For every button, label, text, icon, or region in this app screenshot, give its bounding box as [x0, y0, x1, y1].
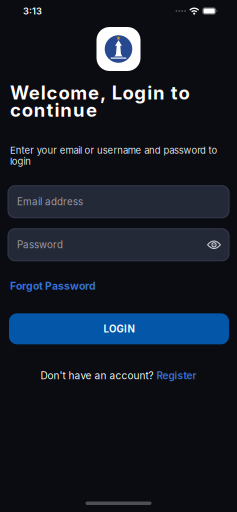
staticText: Welcome, Login to continue — [10, 84, 190, 119]
staticText: Forgot Password — [10, 280, 96, 292]
staticText: Register — [156, 369, 196, 381]
staticText: 3:13 — [23, 5, 42, 17]
staticText: Email address — [17, 196, 83, 208]
staticText: Don't have an account? — [40, 369, 153, 381]
staticText: LOGIN — [103, 323, 134, 335]
staticText: Password — [17, 239, 63, 251]
staticText: Enter your email or username and passwor… — [10, 145, 217, 167]
